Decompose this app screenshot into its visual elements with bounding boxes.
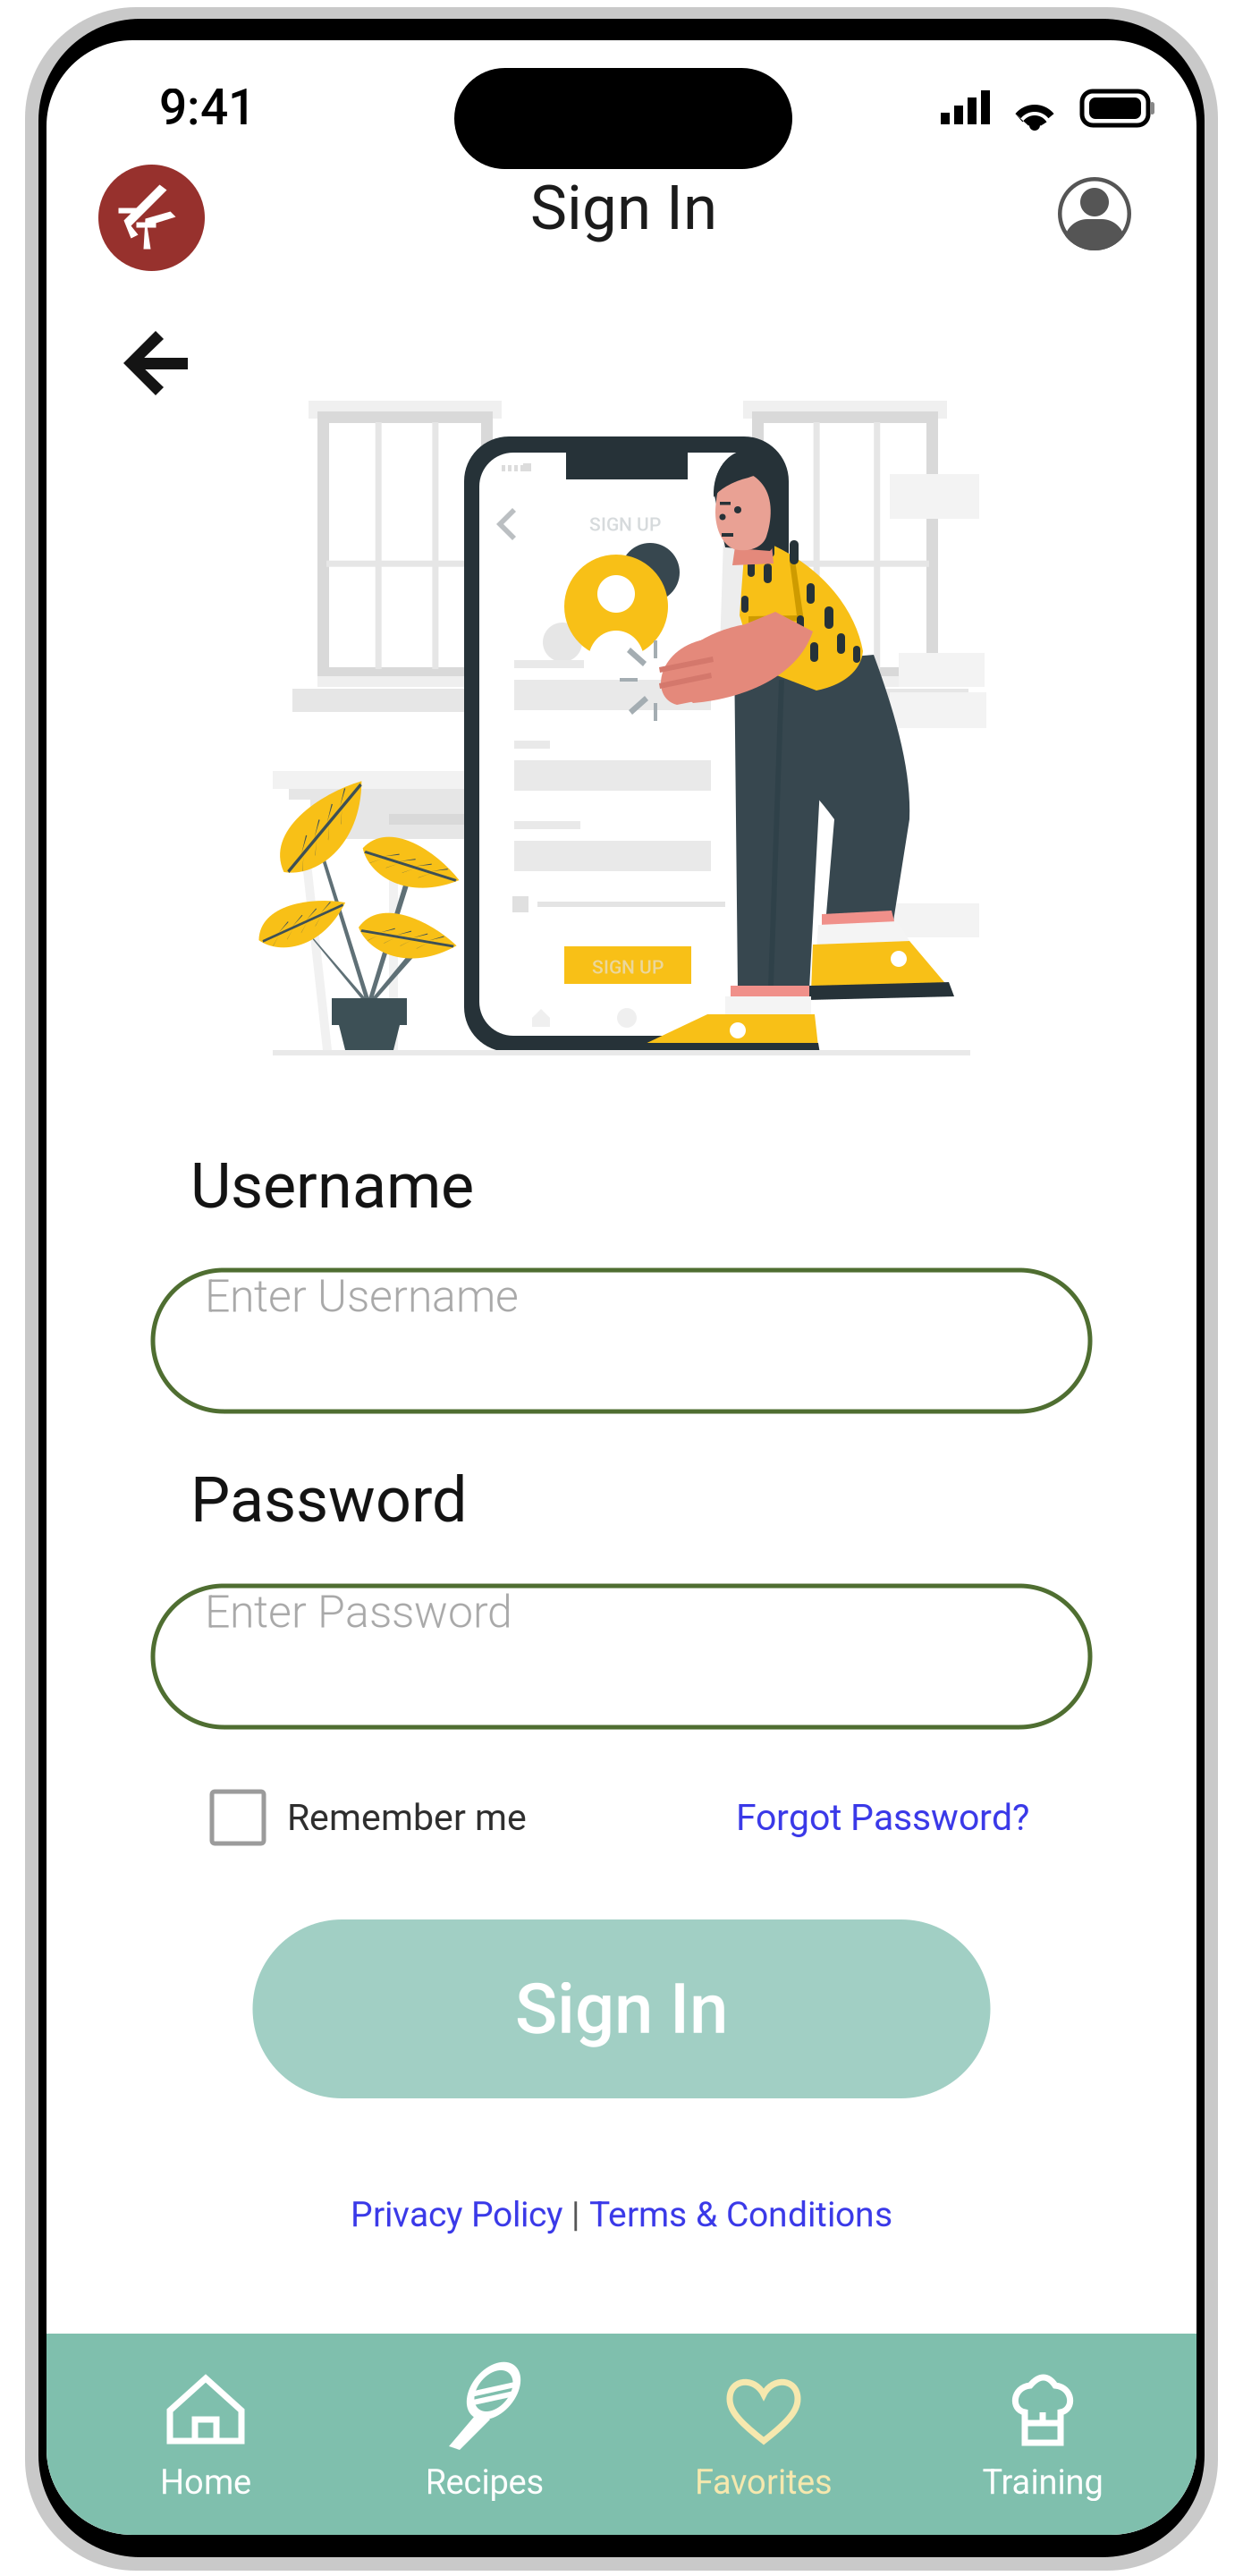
staticText: Forgot Password? <box>736 1796 1029 1839</box>
staticText: Favorites <box>695 2462 833 2502</box>
button[interactable]: Forgot Password? <box>736 1796 1029 1839</box>
staticText: Sign In <box>530 172 717 244</box>
staticText: Training <box>982 2462 1103 2502</box>
staticText: 9:41 <box>159 79 256 136</box>
staticText: | <box>562 2194 589 2235</box>
button[interactable]: Sign In <box>253 1919 990 2098</box>
staticText: Privacy Policy <box>351 2194 562 2235</box>
staticText: SIGN UP <box>589 513 661 535</box>
staticText: Username <box>190 1149 474 1223</box>
button[interactable]: Recipes <box>345 2334 624 2535</box>
staticText: Password <box>190 1463 467 1537</box>
button[interactable]: Privacy Policy <box>351 2194 562 2235</box>
button[interactable]: Remember me <box>212 1792 527 1843</box>
staticText: Terms & Conditions <box>589 2194 892 2235</box>
button[interactable]: Brand logo <box>98 165 205 271</box>
staticText: Remember me <box>287 1796 527 1839</box>
button[interactable]: Back <box>122 331 190 395</box>
staticText: Sign In <box>515 1968 728 2050</box>
button[interactable]: Favorites <box>624 2334 903 2535</box>
staticText: Recipes <box>425 2462 544 2502</box>
staticText: SIGN UP <box>592 956 664 978</box>
button[interactable]: Account <box>1058 177 1131 250</box>
staticText: Home <box>160 2462 251 2502</box>
button[interactable]: Terms & Conditions <box>589 2194 892 2235</box>
button[interactable]: Enter Username <box>153 1270 1090 1411</box>
button[interactable]: Training <box>903 2334 1182 2535</box>
button[interactable]: Enter Password <box>153 1586 1090 1727</box>
button[interactable]: Home <box>66 2334 345 2535</box>
staticText: Enter Password <box>205 1586 512 1638</box>
staticText: Enter Username <box>205 1270 519 1323</box>
